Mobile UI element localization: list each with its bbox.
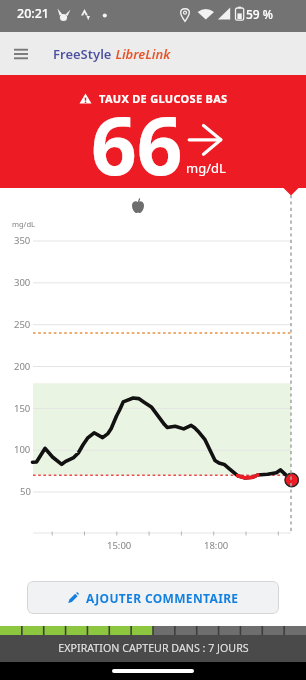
staticText: 300 (14, 276, 31, 289)
button[interactable]: EXPIRATION CAPTEUR DANS : 7 JOURS (0, 626, 306, 662)
staticText: 66 (91, 89, 183, 198)
button[interactable]: Menu (8, 41, 34, 67)
staticText: mg/dL (12, 219, 35, 229)
staticText: 59 % (246, 6, 274, 22)
button[interactable]: AJOUTER COMMENTAIRE (27, 581, 279, 614)
staticText: 15:00 (107, 539, 132, 552)
staticText: 150 (14, 402, 31, 415)
staticText: 100 (14, 443, 31, 456)
staticText: AJOUTER COMMENTAIRE (86, 590, 239, 606)
staticText: 350 (14, 234, 31, 247)
staticText: 20:21 (17, 5, 50, 22)
staticText: LibreLink (112, 45, 171, 63)
other: Glucose trend stable (186, 120, 226, 160)
staticText: EXPIRATION CAPTEUR DANS : 7 JOURS (58, 641, 249, 656)
staticText: 250 (14, 318, 31, 331)
staticText: 200 (14, 360, 31, 373)
staticText: FreeStyle (53, 45, 112, 63)
staticText: mg/dL (186, 159, 226, 177)
staticText: 50 (20, 485, 31, 498)
staticText: TAUX DE GLUCOSE BAS (99, 91, 228, 106)
staticText: 18:00 (204, 539, 229, 552)
